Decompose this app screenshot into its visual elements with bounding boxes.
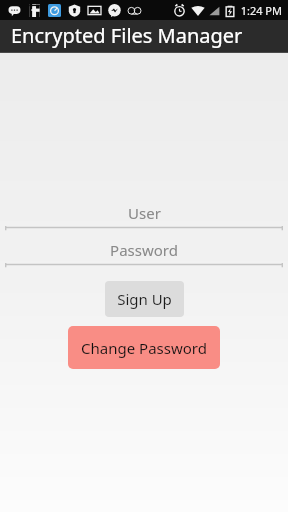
staticText: Sign Up bbox=[117, 289, 172, 309]
button[interactable]: Change Password bbox=[68, 326, 220, 369]
button[interactable]: Password bbox=[5, 237, 283, 268]
staticText: 1:24 PM bbox=[240, 3, 282, 18]
staticText: Encrypted Files Manager bbox=[11, 22, 243, 49]
staticText: User bbox=[128, 203, 161, 223]
staticText: Password bbox=[110, 240, 178, 260]
button[interactable]: User bbox=[5, 200, 283, 231]
button[interactable]: Sign Up bbox=[105, 281, 184, 317]
staticText: Change Password bbox=[81, 338, 207, 358]
